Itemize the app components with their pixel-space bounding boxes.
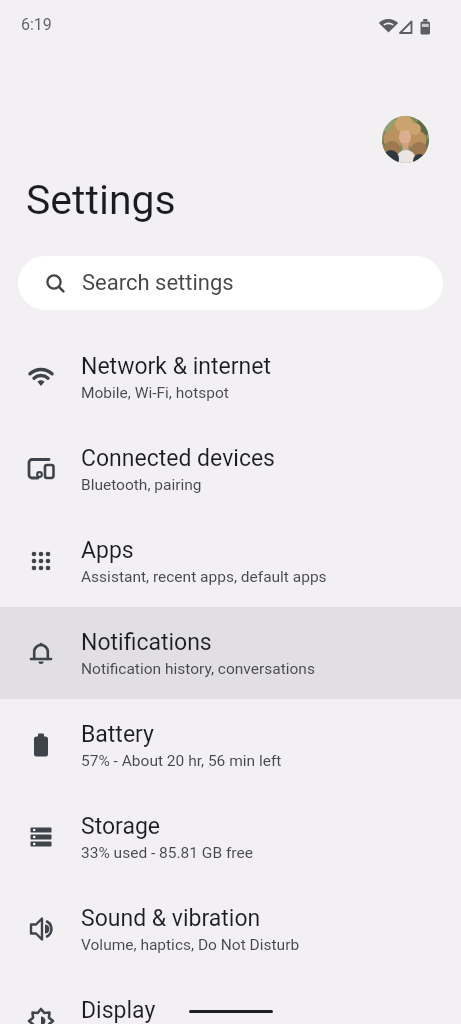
button[interactable]: Search settings bbox=[18, 256, 443, 310]
button[interactable]: Apps bbox=[0, 515, 461, 607]
staticText: Sound & vibration bbox=[81, 905, 261, 932]
staticText: Notifications bbox=[81, 629, 212, 656]
staticText: Assistant, recent apps, default apps bbox=[81, 568, 327, 586]
staticText: Apps bbox=[81, 537, 134, 564]
button[interactable]: Connected devices bbox=[0, 423, 461, 515]
staticText: Notification history, conversations bbox=[81, 660, 315, 678]
staticText: Network & internet bbox=[81, 353, 271, 380]
button[interactable]: Notifications bbox=[0, 607, 461, 699]
staticText: Battery bbox=[81, 721, 154, 748]
staticText: 6:19 bbox=[21, 15, 52, 34]
staticText: Settings bbox=[26, 176, 176, 224]
staticText: Bluetooth, pairing bbox=[81, 476, 202, 494]
button[interactable]: Network & internet bbox=[0, 331, 461, 423]
staticText: Search settings bbox=[82, 270, 234, 296]
staticText: 33% used - 85.81 GB free bbox=[81, 844, 253, 862]
staticText: Volume, haptics, Do Not Disturb bbox=[81, 936, 300, 954]
button[interactable]: Battery bbox=[0, 699, 461, 791]
staticText: 57% - About 20 hr, 56 min left bbox=[81, 752, 282, 770]
button[interactable]: Storage bbox=[0, 791, 461, 883]
staticText: Display bbox=[81, 997, 156, 1024]
button[interactable] bbox=[382, 116, 429, 163]
staticText: Storage bbox=[81, 813, 161, 840]
staticText: Connected devices bbox=[81, 445, 275, 472]
staticText: Mobile, Wi-Fi, hotspot bbox=[81, 384, 229, 402]
button[interactable]: Sound & vibration bbox=[0, 883, 461, 975]
button[interactable]: Display bbox=[0, 975, 461, 1024]
